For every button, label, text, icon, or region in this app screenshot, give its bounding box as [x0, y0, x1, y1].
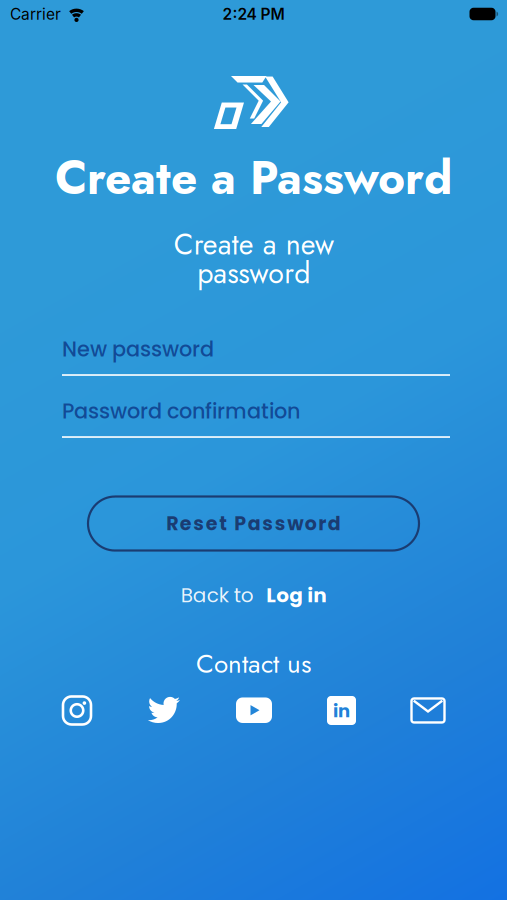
staticText: Back to: [181, 584, 254, 606]
staticText: Carrier: [10, 5, 61, 23]
button[interactable]: Reset Password: [88, 496, 419, 550]
staticText: Log in: [266, 584, 326, 606]
staticText: Reset Password: [166, 513, 341, 534]
staticText: Contact us: [196, 649, 311, 678]
button[interactable]: Instagram: [62, 695, 92, 726]
staticText: Create a new password: [173, 230, 333, 288]
button[interactable]: YouTube: [236, 697, 272, 723]
button[interactable]: New password: [62, 338, 450, 376]
staticText: Create a Password: [55, 152, 452, 204]
button[interactable]: Twitter: [146, 693, 181, 728]
staticText: Password confirmation: [62, 400, 300, 423]
button[interactable]: Email: [411, 697, 445, 723]
staticText: in: [333, 701, 350, 721]
button[interactable]: Log in: [266, 584, 326, 606]
button[interactable]: Password confirmation: [62, 400, 450, 438]
staticText: 2:24 PM: [222, 5, 284, 23]
staticText: New password: [62, 338, 214, 361]
button[interactable]: LinkedIn: [326, 695, 356, 725]
